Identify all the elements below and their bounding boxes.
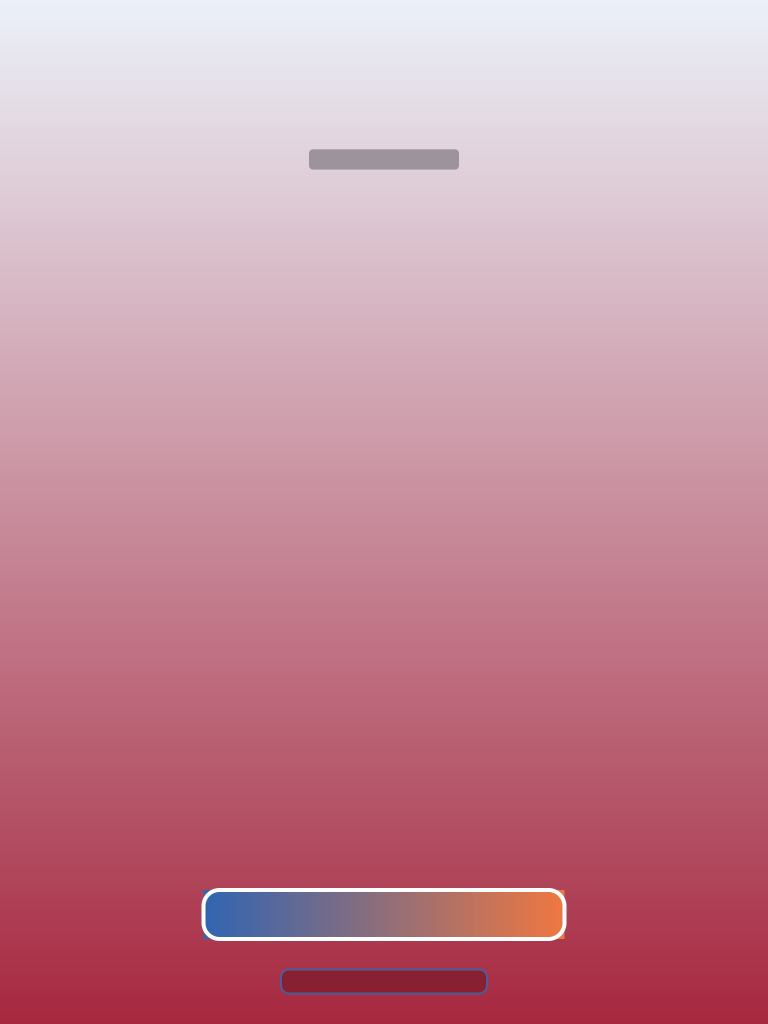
button[interactable]: Continue [203, 890, 564, 939]
button[interactable]: Not now [281, 969, 487, 993]
